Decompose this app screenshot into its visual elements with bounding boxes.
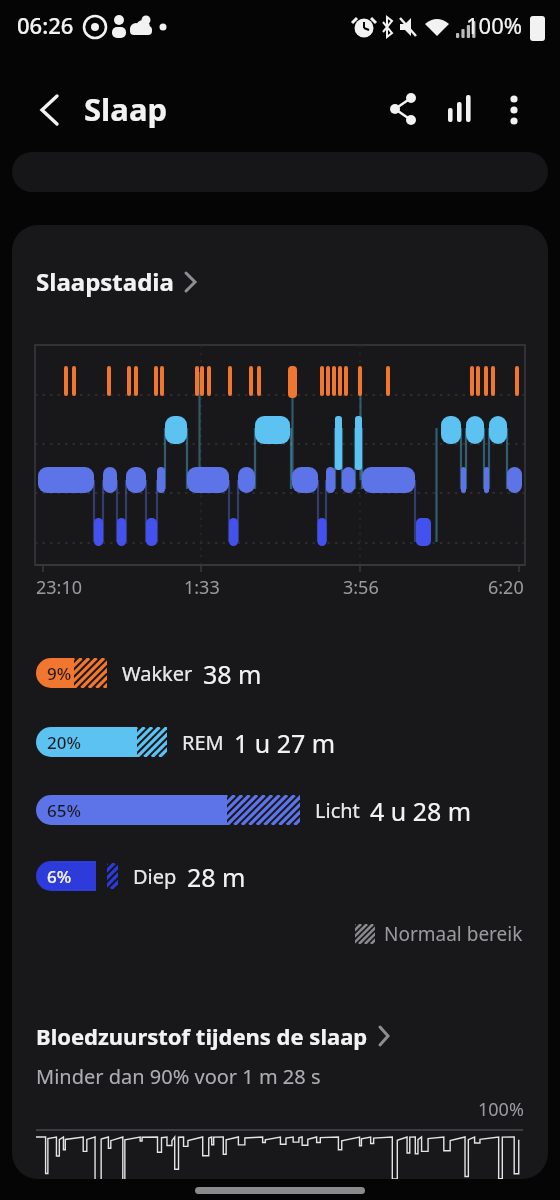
staticText: 3:56 <box>343 575 379 600</box>
staticText: 9% <box>47 662 72 685</box>
button[interactable]: Bloedzuurstof tijdens de slaap <box>36 1021 396 1051</box>
staticText: Slaapstadia <box>36 265 174 298</box>
button[interactable] <box>195 1187 365 1194</box>
staticText: 1:33 <box>184 575 220 600</box>
staticText: 6:20 <box>488 575 524 600</box>
button[interactable]: 20% <box>36 726 548 758</box>
staticText: 4 u 28 m <box>370 794 472 826</box>
staticText: Licht <box>315 797 360 824</box>
staticText: 1 u 27 m <box>234 726 336 758</box>
staticText: 38 m <box>203 657 262 689</box>
button[interactable] <box>386 92 422 128</box>
staticText: 23:10 <box>36 575 83 600</box>
staticText: 20% <box>47 731 81 754</box>
staticText: 06:26 <box>17 10 74 40</box>
staticText: 28 m <box>187 860 246 892</box>
staticText: Bloedzuurstof tijdens de slaap <box>36 1021 368 1051</box>
staticText: Slaap <box>84 88 168 130</box>
button[interactable]: Normaal bereik <box>36 921 523 947</box>
button[interactable]: 6% <box>36 860 548 892</box>
staticText: 100% <box>466 10 523 40</box>
button[interactable]: Slaapstadia <box>36 265 204 298</box>
staticText: Minder dan 90% voor 1 m 28 s <box>36 1063 321 1090</box>
button[interactable] <box>496 92 532 128</box>
staticText: Wakker <box>122 660 193 687</box>
button[interactable] <box>442 92 478 128</box>
staticText: 100% <box>478 1097 524 1122</box>
staticText: REM <box>182 729 224 756</box>
staticText: Normaal bereik <box>384 921 523 947</box>
button[interactable] <box>30 92 66 128</box>
button[interactable]: 65% <box>36 794 548 826</box>
staticText: 65% <box>47 799 81 822</box>
staticText: Diep <box>133 863 177 890</box>
staticText: 6% <box>47 865 72 888</box>
button[interactable]: 9% <box>36 657 548 689</box>
